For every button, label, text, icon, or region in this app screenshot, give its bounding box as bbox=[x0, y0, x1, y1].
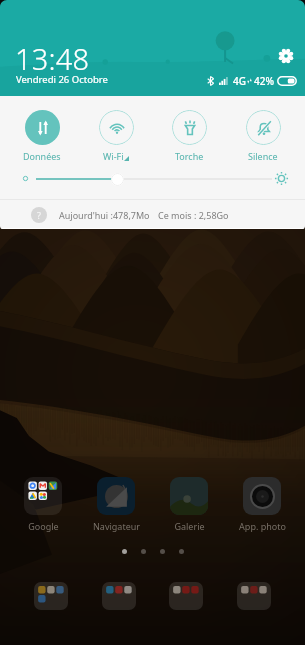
button[interactable]: Google bbox=[13, 477, 73, 532]
staticText: 4G bbox=[233, 74, 246, 87]
button[interactable]: Torche bbox=[158, 110, 220, 162]
staticText: Silence bbox=[248, 150, 278, 162]
staticText: Aujourd'hui :478,7Mo bbox=[59, 209, 150, 221]
staticText: Vendredi 26 Octobre bbox=[16, 73, 108, 86]
staticText: Torche bbox=[175, 150, 204, 162]
button[interactable]: Données bbox=[11, 110, 73, 162]
button[interactable]: Wi-Fi bbox=[85, 110, 147, 162]
staticText: Ce mois : 2,58Go bbox=[158, 209, 229, 221]
button[interactable]: Silence bbox=[232, 110, 294, 162]
button[interactable]: App folder bbox=[237, 582, 271, 610]
staticText: App. photo bbox=[239, 520, 286, 532]
button[interactable]: Brightness bbox=[111, 173, 124, 186]
staticText: 42% bbox=[254, 74, 274, 87]
button[interactable]: App folder bbox=[102, 582, 136, 610]
button[interactable]: Navigateur bbox=[86, 477, 146, 532]
staticText: ? bbox=[37, 209, 41, 221]
button[interactable]: App folder bbox=[169, 582, 203, 610]
button[interactable]: App folder bbox=[34, 582, 68, 610]
staticText: 13:48 bbox=[15, 39, 90, 78]
button[interactable]: App. photo bbox=[232, 477, 292, 532]
staticText: Wi-Fi bbox=[103, 150, 124, 162]
staticText: Galerie bbox=[174, 520, 205, 532]
staticText: Navigateur bbox=[93, 520, 140, 532]
button[interactable]: Galerie bbox=[159, 477, 219, 532]
button[interactable]: Settings bbox=[276, 46, 296, 66]
staticText: Données bbox=[23, 150, 61, 162]
staticText: Google bbox=[28, 520, 59, 532]
